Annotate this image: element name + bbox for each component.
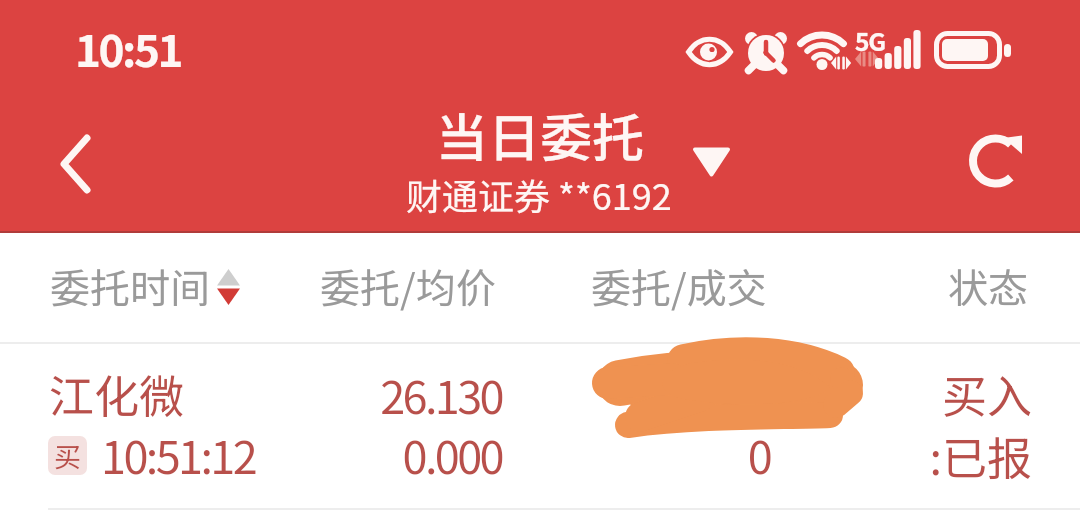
staticText: 买 xyxy=(54,436,81,475)
staticText: 10:51:12 xyxy=(101,422,256,487)
staticText: 当日委托 xyxy=(436,97,645,172)
button[interactable]: Refresh xyxy=(950,116,1040,206)
button[interactable]: 状态 xyxy=(948,257,1028,315)
staticText: 江化微 xyxy=(49,361,185,426)
staticText: 买入 xyxy=(782,361,1032,426)
button[interactable]: 江化微 xyxy=(0,344,1080,511)
staticText: 10:51 xyxy=(75,16,182,80)
staticText: :已报 xyxy=(782,423,1032,488)
button[interactable]: Back xyxy=(26,116,122,212)
staticText: 5G xyxy=(855,22,885,58)
button[interactable]: 委托/成交 xyxy=(591,257,767,315)
button[interactable]: 当日委托 xyxy=(0,97,1080,172)
staticText: 财通证券 **6192 xyxy=(406,168,672,220)
staticText: 0 xyxy=(520,422,770,487)
staticText: 0.000 xyxy=(252,422,502,487)
button[interactable]: 委托/均价 xyxy=(320,257,496,315)
staticText: 26.130 xyxy=(252,362,502,427)
button[interactable]: 委托时间 xyxy=(50,257,240,315)
staticText: 委托时间 xyxy=(50,257,210,315)
button[interactable]: Select account xyxy=(676,128,746,198)
